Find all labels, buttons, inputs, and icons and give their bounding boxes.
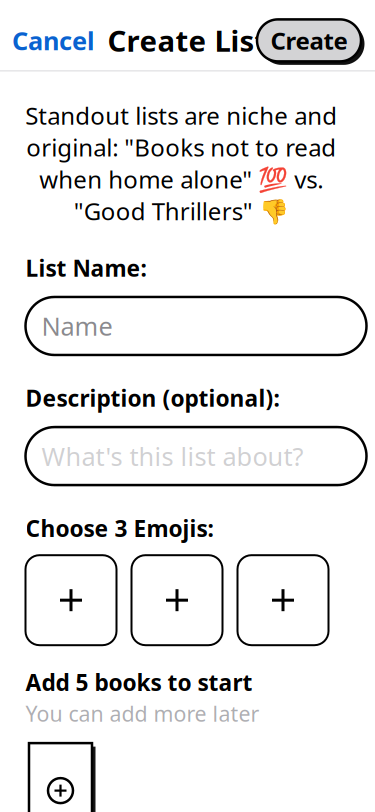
- staticText: Create List: [107, 21, 267, 60]
- staticText: Add 5 books to start: [25, 667, 252, 697]
- staticText: Cancel: [12, 24, 95, 57]
- button[interactable]: Choose emoji: [237, 555, 328, 645]
- staticText: Choose 3 Emojis:: [25, 513, 213, 543]
- staticText: Description (optional):: [25, 383, 279, 413]
- staticText: Create: [270, 24, 347, 56]
- staticText: List Name:: [25, 253, 146, 283]
- button[interactable]: Create: [253, 15, 365, 65]
- staticText: Name: [41, 309, 112, 343]
- button[interactable]: Cancel: [10, 18, 97, 63]
- button[interactable]: Choose emoji: [25, 555, 116, 645]
- button[interactable]: Name: [25, 297, 366, 355]
- button[interactable]: Add book: [25, 740, 95, 812]
- staticText: You can add more later: [25, 699, 259, 728]
- button[interactable]: Choose emoji: [131, 555, 222, 645]
- staticText: Standout lists are niche and original: "…: [25, 99, 337, 227]
- staticText: What's this list about?: [41, 439, 303, 473]
- button[interactable]: What's this list about?: [25, 427, 366, 485]
